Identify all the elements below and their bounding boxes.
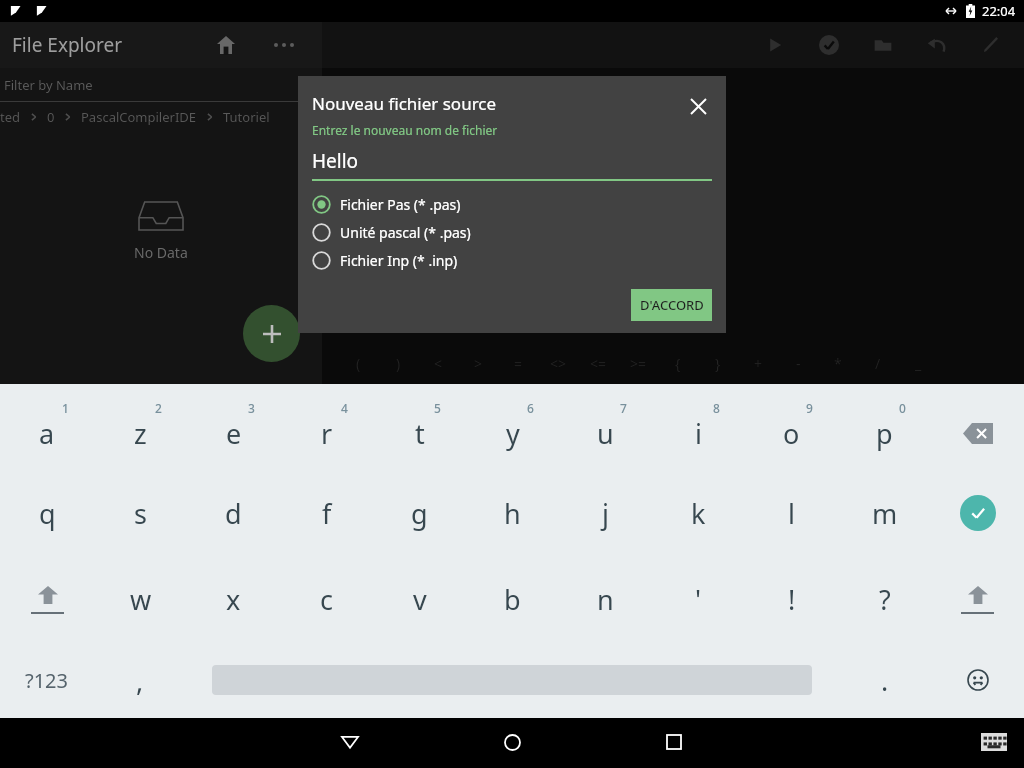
button[interactable]: l bbox=[745, 470, 838, 556]
button[interactable]: k bbox=[652, 470, 745, 556]
staticText: ) bbox=[396, 354, 401, 373]
button[interactable]: Fichier Inp (* .inp) bbox=[312, 251, 712, 270]
button[interactable]: ?123 bbox=[0, 642, 93, 718]
button[interactable]: D'ACCORD bbox=[631, 289, 712, 321]
button[interactable]: 2 bbox=[94, 384, 187, 470]
button[interactable]: Fichier Pas (* .pas) bbox=[312, 195, 712, 214]
button[interactable]: Close bbox=[684, 92, 712, 120]
staticText: { bbox=[675, 354, 681, 373]
button[interactable]: Emoji bbox=[931, 642, 1024, 718]
button[interactable]: . bbox=[838, 642, 931, 718]
button[interactable]: q bbox=[0, 470, 94, 556]
button[interactable]: Recents bbox=[650, 718, 698, 766]
button[interactable]: Run bbox=[756, 26, 794, 64]
button[interactable]: s bbox=[94, 470, 187, 556]
button[interactable]: d bbox=[187, 470, 280, 556]
button[interactable]: , bbox=[93, 642, 186, 718]
button[interactable]: 5 bbox=[373, 384, 466, 470]
staticText: + bbox=[754, 354, 763, 373]
staticText: p bbox=[876, 415, 893, 452]
button[interactable]: Open folder bbox=[864, 26, 902, 64]
staticText: Hello bbox=[312, 148, 359, 174]
button[interactable]: More options bbox=[266, 27, 302, 63]
staticText: >= bbox=[630, 354, 647, 373]
button[interactable]: 9 bbox=[745, 384, 838, 470]
button[interactable]: ! bbox=[745, 556, 838, 642]
staticText: 8 bbox=[713, 400, 720, 416]
button[interactable]: ted bbox=[0, 108, 21, 126]
button[interactable]: Home bbox=[206, 25, 246, 65]
button[interactable]: 7 bbox=[559, 384, 652, 470]
button[interactable]: 4 bbox=[280, 384, 373, 470]
button[interactable]: c bbox=[280, 556, 373, 642]
button[interactable]: h bbox=[466, 470, 559, 556]
button[interactable]: Switch keyboard bbox=[974, 722, 1014, 762]
button[interactable]: Edit bbox=[972, 26, 1010, 64]
staticText: g bbox=[411, 495, 428, 532]
staticText: Fichier Pas (* .pas) bbox=[340, 195, 461, 214]
button[interactable]: PascalCompilerIDE bbox=[81, 108, 197, 126]
button[interactable]: Back bbox=[326, 718, 374, 766]
staticText: v bbox=[413, 581, 427, 618]
button[interactable]: 1 bbox=[0, 384, 94, 470]
staticText: Unité pascal (* .pas) bbox=[340, 223, 471, 242]
staticText: Nouveau fichier source bbox=[312, 92, 684, 115]
button[interactable]: b bbox=[466, 556, 559, 642]
staticText: Fichier Inp (* .inp) bbox=[340, 251, 458, 270]
button[interactable]: ? bbox=[838, 556, 931, 642]
button[interactable]: Backspace bbox=[931, 384, 1024, 470]
staticText: l bbox=[788, 495, 795, 532]
button[interactable]: 8 bbox=[652, 384, 745, 470]
button[interactable]: Space bbox=[186, 642, 838, 718]
staticText: - bbox=[796, 354, 801, 373]
button[interactable]: Add bbox=[243, 305, 300, 362]
button[interactable]: 3 bbox=[187, 384, 280, 470]
button[interactable]: Shift bbox=[0, 556, 94, 642]
button[interactable]: ' bbox=[652, 556, 745, 642]
button[interactable]: 0 bbox=[47, 108, 55, 126]
button[interactable]: n bbox=[559, 556, 652, 642]
button[interactable]: Shift bbox=[931, 556, 1024, 642]
button[interactable]: j bbox=[559, 470, 652, 556]
staticText: 2 bbox=[155, 400, 162, 416]
staticText: y bbox=[506, 415, 520, 452]
staticText: j bbox=[602, 495, 609, 532]
staticText: e bbox=[226, 415, 242, 452]
button[interactable]: Tutoriel bbox=[223, 108, 270, 126]
button[interactable]: g bbox=[373, 470, 466, 556]
staticText: Entrez le nouveau nom de fichier bbox=[312, 122, 498, 138]
button[interactable]: x bbox=[187, 556, 280, 642]
button[interactable]: 0 bbox=[838, 384, 931, 470]
staticText: No Data bbox=[134, 243, 188, 262]
button[interactable]: f bbox=[280, 470, 373, 556]
staticText: File Explorer bbox=[12, 32, 123, 58]
staticText: n bbox=[597, 581, 614, 618]
button[interactable]: m bbox=[838, 470, 931, 556]
button[interactable]: Undo bbox=[918, 26, 956, 64]
button[interactable]: w bbox=[94, 556, 187, 642]
staticText: q bbox=[39, 495, 56, 532]
button[interactable]: v bbox=[373, 556, 466, 642]
button[interactable]: 6 bbox=[466, 384, 559, 470]
button[interactable]: Home bbox=[488, 718, 536, 766]
button[interactable]: Enter bbox=[931, 470, 1024, 556]
button[interactable]: Unité pascal (* .pas) bbox=[312, 223, 712, 242]
staticText: , bbox=[136, 662, 144, 699]
button[interactable]: Compile bbox=[810, 26, 848, 64]
staticText: <> bbox=[550, 354, 567, 373]
